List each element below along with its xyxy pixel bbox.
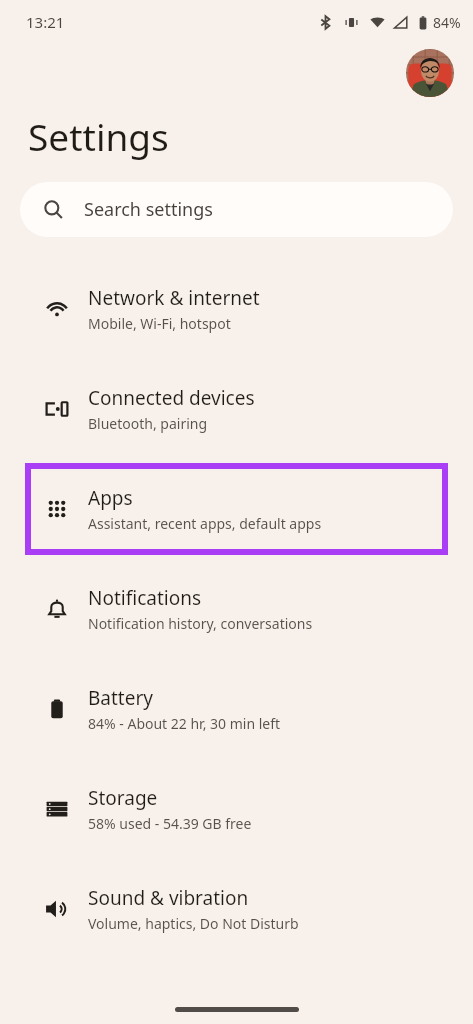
staticText: Mobile, Wi-Fi, hotspot: [88, 314, 231, 333]
staticText: 13:21: [26, 12, 65, 32]
staticText: Network & internet: [88, 285, 260, 311]
staticText: Apps: [88, 485, 133, 511]
button[interactable]: Search settings: [20, 182, 453, 237]
staticText: Bluetooth, pairing: [88, 414, 208, 433]
staticText: Volume, haptics, Do Not Disturb: [88, 914, 299, 933]
button[interactable]: Account profile: [406, 49, 454, 97]
button[interactable]: Notifications: [0, 559, 473, 659]
staticText: Settings: [28, 111, 169, 161]
staticText: 84%: [433, 13, 461, 32]
staticText: Storage: [88, 785, 158, 811]
button[interactable]: Storage: [0, 759, 473, 859]
button[interactable]: Sound & vibration: [0, 859, 473, 959]
staticText: Sound & vibration: [88, 885, 249, 911]
button[interactable]: Network & internet: [0, 259, 473, 359]
staticText: Connected devices: [88, 385, 255, 411]
button[interactable]: Apps: [25, 459, 448, 559]
staticText: Assistant, recent apps, default apps: [88, 514, 322, 533]
button[interactable]: Connected devices: [0, 359, 473, 459]
staticText: Notifications: [88, 585, 202, 611]
button[interactable]: Battery: [0, 659, 473, 759]
staticText: Battery: [88, 685, 153, 711]
staticText: Notification history, conversations: [88, 614, 313, 633]
staticText: 58% used - 54.39 GB free: [88, 814, 252, 833]
staticText: Search settings: [84, 197, 213, 222]
staticText: 84% - About 22 hr, 30 min left: [88, 714, 281, 733]
